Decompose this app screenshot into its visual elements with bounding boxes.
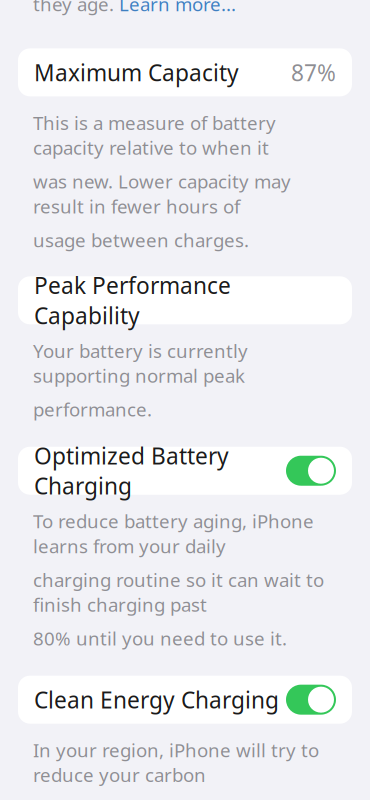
staticText: This is a measure of battery capacity re… [33, 110, 276, 160]
staticText: Maximum Capacity [34, 57, 239, 87]
staticText: Optimized Battery Charging [34, 441, 229, 501]
staticText: Peak Performance Capability [34, 270, 231, 330]
staticText: Your battery is currently supporting nor… [33, 338, 248, 388]
staticText: In your region, iPhone will try to reduc… [33, 738, 319, 787]
staticText: Clean Energy Charging [34, 685, 279, 715]
staticText: usage between charges. [33, 227, 249, 252]
staticText: 87% [291, 57, 336, 87]
button[interactable]: Learn more... [119, 0, 236, 16]
staticText: Learn more... [119, 0, 236, 16]
staticText: To reduce battery aging, iPhone learns f… [33, 509, 314, 558]
staticText: performance. [33, 397, 152, 422]
button[interactable]: Optimized Battery Charging [0, 447, 370, 495]
staticText: charging routine so it can wait to finis… [33, 567, 324, 617]
staticText: 80% until you need to use it. [33, 626, 287, 651]
staticText: they age. [33, 0, 114, 16]
button[interactable]: Clean Energy Charging [0, 676, 370, 724]
staticText: was new. Lower capacity may result in fe… [33, 169, 291, 219]
